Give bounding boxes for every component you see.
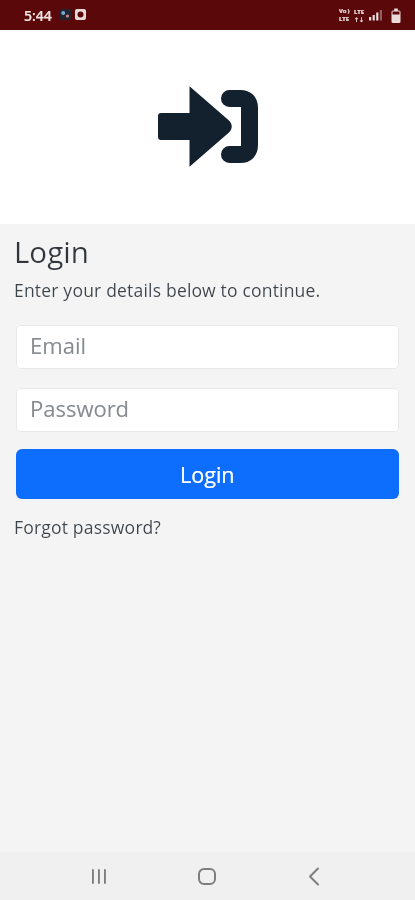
staticText: Login: [14, 231, 89, 271]
button[interactable]: Email: [16, 325, 399, 369]
button[interactable]: Login: [16, 449, 399, 499]
staticText: ↑↓: [354, 16, 365, 23]
staticText: Email: [30, 330, 87, 360]
staticText: Password: [30, 393, 129, 423]
staticText: Enter your details below to continue.: [14, 278, 321, 302]
button[interactable]: [79, 856, 119, 896]
staticText: LTE: [354, 8, 365, 16]
staticText: Vo ): [339, 7, 350, 15]
staticText: 5:44: [24, 6, 52, 25]
button[interactable]: [187, 856, 227, 896]
button[interactable]: [294, 856, 334, 896]
staticText: Forgot password?: [14, 515, 162, 539]
staticText: LTE: [339, 15, 350, 23]
button[interactable]: Password: [16, 388, 399, 432]
staticText: Login: [180, 460, 235, 489]
button[interactable]: Forgot password?: [14, 511, 162, 543]
